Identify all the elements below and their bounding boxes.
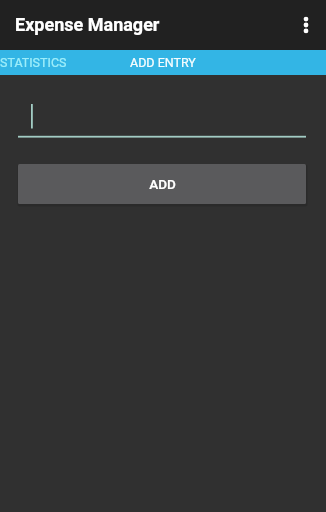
button[interactable]: Entry input field (18, 104, 306, 138)
staticText: Expense Manager (15, 14, 160, 35)
button[interactable]: More options (284, 0, 326, 50)
button[interactable]: STATISTICS (0, 50, 97, 75)
button[interactable]: ADD (18, 164, 306, 204)
staticText: ADD ENTRY (130, 55, 196, 70)
staticText: ADD (149, 176, 176, 192)
staticText: STATISTICS (0, 55, 67, 70)
button[interactable]: ADD ENTRY (99, 50, 226, 75)
